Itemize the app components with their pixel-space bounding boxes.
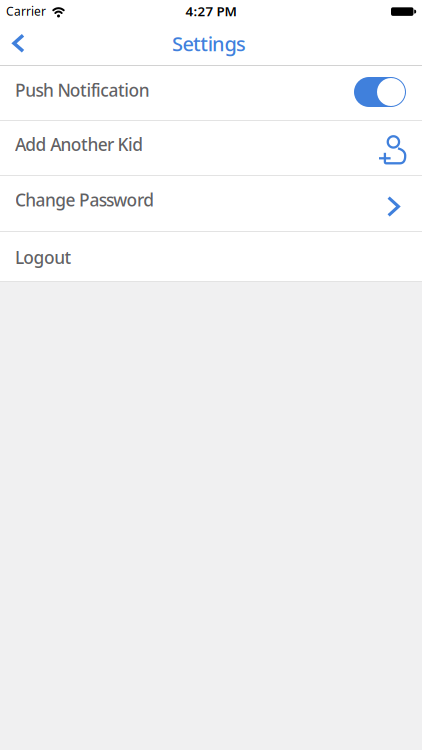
button[interactable]: Back <box>0 25 39 65</box>
staticText: Settings <box>172 30 246 57</box>
staticText: Carrier <box>6 3 46 19</box>
staticText: Push Notification <box>15 78 150 101</box>
staticText: Logout <box>15 246 71 269</box>
button[interactable]: Change Password <box>0 176 422 232</box>
staticText: 4:27 PM <box>185 2 236 20</box>
button[interactable]: Push Notification <box>0 66 422 121</box>
staticText: Add Another Kid <box>15 133 143 156</box>
button[interactable]: Logout <box>0 232 422 282</box>
button[interactable]: Add Another Kid <box>0 121 422 176</box>
staticText: Change Password <box>15 188 154 211</box>
